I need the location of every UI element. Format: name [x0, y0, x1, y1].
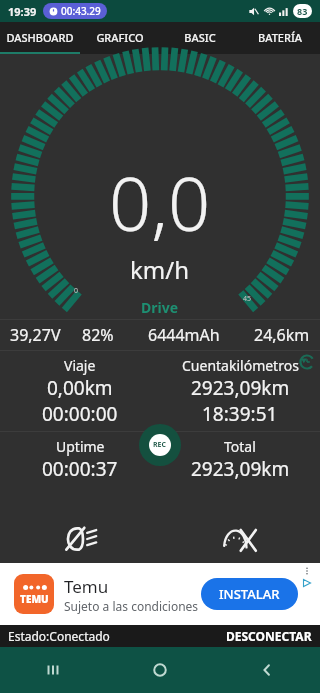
- staticText: DASHBOARD: [6, 30, 74, 45]
- button[interactable]: Control de velocidad desactivado: [160, 515, 320, 563]
- staticText: GRAFICO: [96, 30, 144, 45]
- button[interactable]: DASHBOARD: [0, 22, 80, 54]
- staticText: Temu: [64, 575, 109, 598]
- staticText: 24,6km: [254, 324, 310, 346]
- staticText: Cuentakilómetros: [182, 356, 299, 375]
- staticText: 82%: [82, 324, 114, 346]
- button[interactable]: Inicio: [106, 647, 213, 693]
- staticText: 18:39:51: [202, 401, 278, 427]
- staticText: 00:00:00: [42, 401, 118, 427]
- button[interactable]: Atrás: [213, 647, 320, 693]
- staticText: TEMU: [20, 592, 49, 606]
- staticText: Total: [224, 437, 256, 456]
- button[interactable]: BASIC: [160, 22, 240, 54]
- staticText: Uptime: [56, 437, 105, 456]
- button[interactable]: GRAFICO: [80, 22, 160, 54]
- button[interactable]: BATERÍA: [240, 22, 320, 54]
- staticText: 6444mAh: [148, 324, 220, 346]
- staticText: BASIC: [184, 30, 216, 45]
- staticText: DESCONECTAR: [226, 628, 312, 644]
- button[interactable]: TEMU: [0, 563, 320, 625]
- staticText: 0,00km: [47, 375, 113, 401]
- staticText: BATERÍA: [258, 30, 302, 45]
- staticText: 0,0: [109, 152, 211, 253]
- staticText: 00:00:37: [42, 456, 118, 482]
- staticText: 2923,09km: [191, 375, 290, 401]
- staticText: Viaje: [64, 356, 96, 375]
- staticText: Sujeto a las condiciones: [64, 598, 199, 614]
- staticText: 39,27V: [10, 324, 61, 346]
- staticText: 0: [74, 286, 79, 296]
- button[interactable]: Luces apagadas: [0, 515, 160, 563]
- staticText: 19:39: [8, 4, 37, 19]
- staticText: REC: [153, 440, 167, 450]
- staticText: 45: [243, 294, 252, 304]
- button[interactable]: DESCONECTAR: [226, 628, 312, 644]
- staticText: 2923,09km: [191, 456, 290, 482]
- staticText: km/h: [130, 253, 190, 286]
- staticText: 83: [297, 5, 308, 17]
- button[interactable]: Grabar: [139, 424, 181, 466]
- staticText: 00:43.29: [61, 4, 101, 18]
- staticText: Drive: [141, 298, 179, 317]
- button[interactable]: Restablecer viaje: [299, 354, 315, 370]
- staticText: Estado:Conectado: [8, 628, 110, 644]
- button[interactable]: Recientes: [0, 647, 106, 693]
- staticText: INSTALAR: [219, 585, 280, 603]
- button[interactable]: INSTALAR: [201, 578, 298, 610]
